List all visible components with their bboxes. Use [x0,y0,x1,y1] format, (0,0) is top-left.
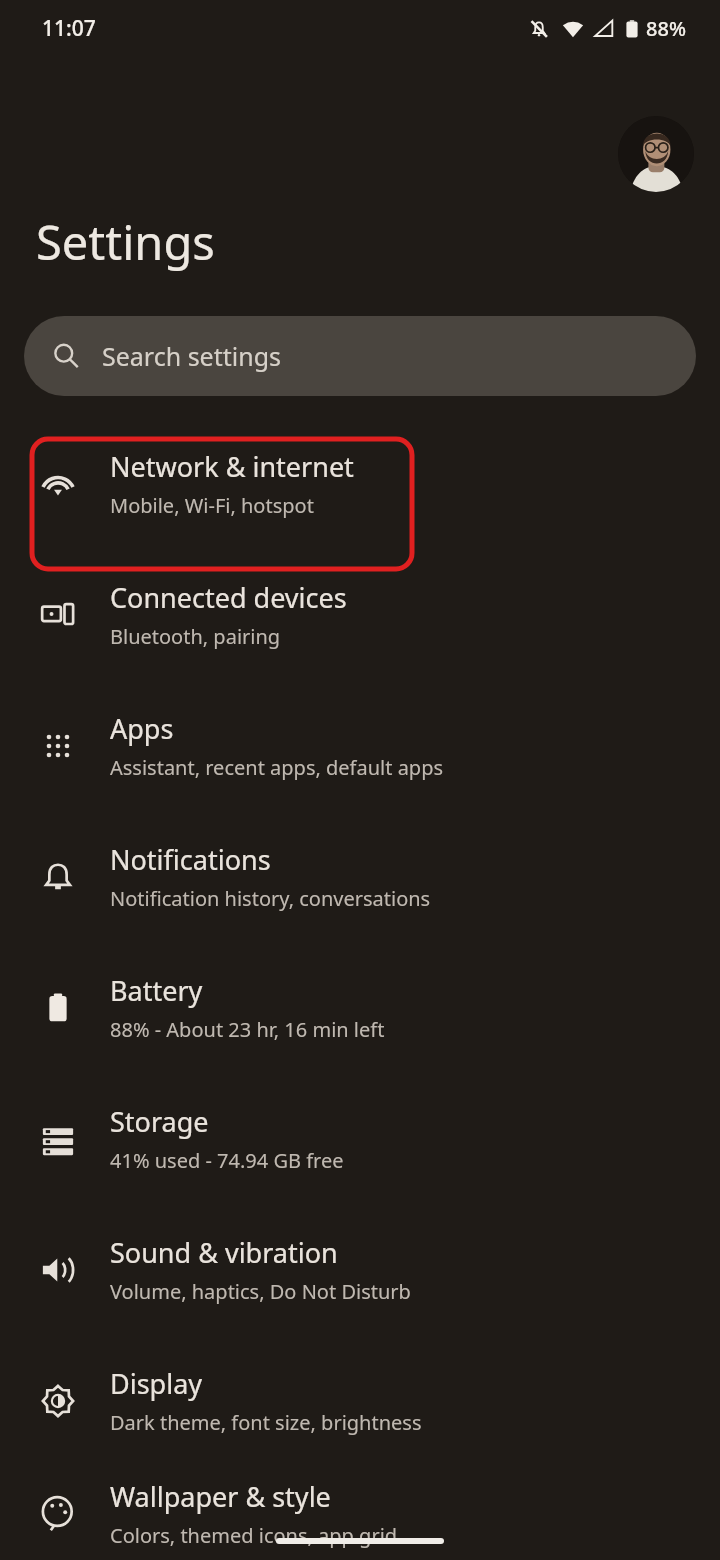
button[interactable]: Apps [0,680,720,811]
button[interactable]: Network & internet [0,418,720,549]
button[interactable]: Account profile [618,116,694,192]
staticText: Sound & vibration [110,1234,338,1271]
staticText: Search settings [102,339,282,373]
staticText: 88% [646,15,686,42]
staticText: 11:07 [42,14,96,43]
staticText: Battery [110,972,203,1009]
button[interactable]: Display [0,1335,720,1466]
staticText: Colors, themed icons, app grid [110,1522,398,1549]
staticText: Notification history, conversations [110,885,431,912]
staticText: Dark theme, font size, brightness [110,1409,422,1436]
staticText: Network & internet [110,448,354,485]
staticText: 88% - About 23 hr, 16 min left [110,1016,385,1043]
button[interactable]: Battery [0,942,720,1073]
staticText: Volume, haptics, Do Not Disturb [110,1278,411,1305]
staticText: Mobile, Wi-Fi, hotspot [110,492,314,519]
staticText: Bluetooth, pairing [110,623,281,650]
button[interactable]: Sound & vibration [0,1204,720,1335]
button[interactable]: Storage [0,1073,720,1204]
staticText: Notifications [110,841,271,878]
staticText: Connected devices [110,579,347,616]
staticText: Wallpaper & style [110,1478,331,1515]
button[interactable]: Connected devices [0,549,720,680]
staticText: Display [110,1365,203,1402]
staticText: Apps [110,710,174,747]
button[interactable]: Notifications [0,811,720,942]
staticText: Settings [36,210,215,274]
staticText: Assistant, recent apps, default apps [110,754,444,781]
button[interactable]: Search settings [24,316,696,396]
staticText: Storage [110,1103,209,1140]
button[interactable]: Wallpaper & style [0,1466,720,1560]
staticText: 41% used - 74.94 GB free [110,1147,344,1174]
